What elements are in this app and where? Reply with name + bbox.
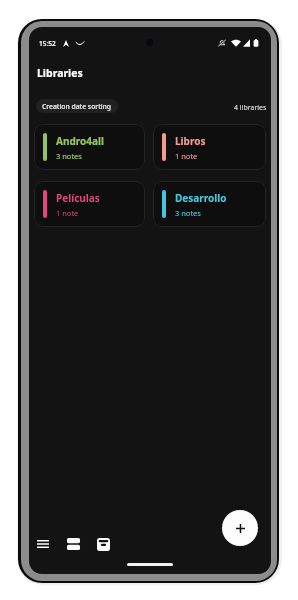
staticText: Desarrollo bbox=[175, 191, 227, 205]
button[interactable]: Add bbox=[222, 510, 258, 546]
button[interactable]: Andro4all bbox=[34, 124, 145, 170]
staticText: 1 note bbox=[56, 208, 79, 218]
staticText: 3 notes bbox=[175, 208, 201, 218]
staticText: 3 notes bbox=[56, 151, 82, 161]
staticText: 1 note bbox=[175, 151, 198, 161]
staticText: Películas bbox=[56, 191, 100, 205]
button[interactable]: Notes bbox=[31, 532, 55, 556]
staticText: Libros bbox=[175, 134, 206, 148]
button[interactable]: Creation date sorting bbox=[36, 99, 118, 113]
button[interactable]: Desarrollo bbox=[153, 181, 266, 227]
staticText: 4 libraries bbox=[234, 103, 267, 113]
staticText: Creation date sorting bbox=[42, 102, 112, 111]
button[interactable]: Archive bbox=[91, 532, 115, 556]
button[interactable]: Reminders bbox=[61, 532, 85, 556]
button[interactable]: Libros bbox=[153, 124, 266, 170]
staticText: 15:52 bbox=[39, 39, 56, 48]
staticText: Andro4all bbox=[56, 134, 104, 148]
staticText: Libraries bbox=[37, 66, 83, 80]
button[interactable]: Películas bbox=[34, 181, 145, 227]
